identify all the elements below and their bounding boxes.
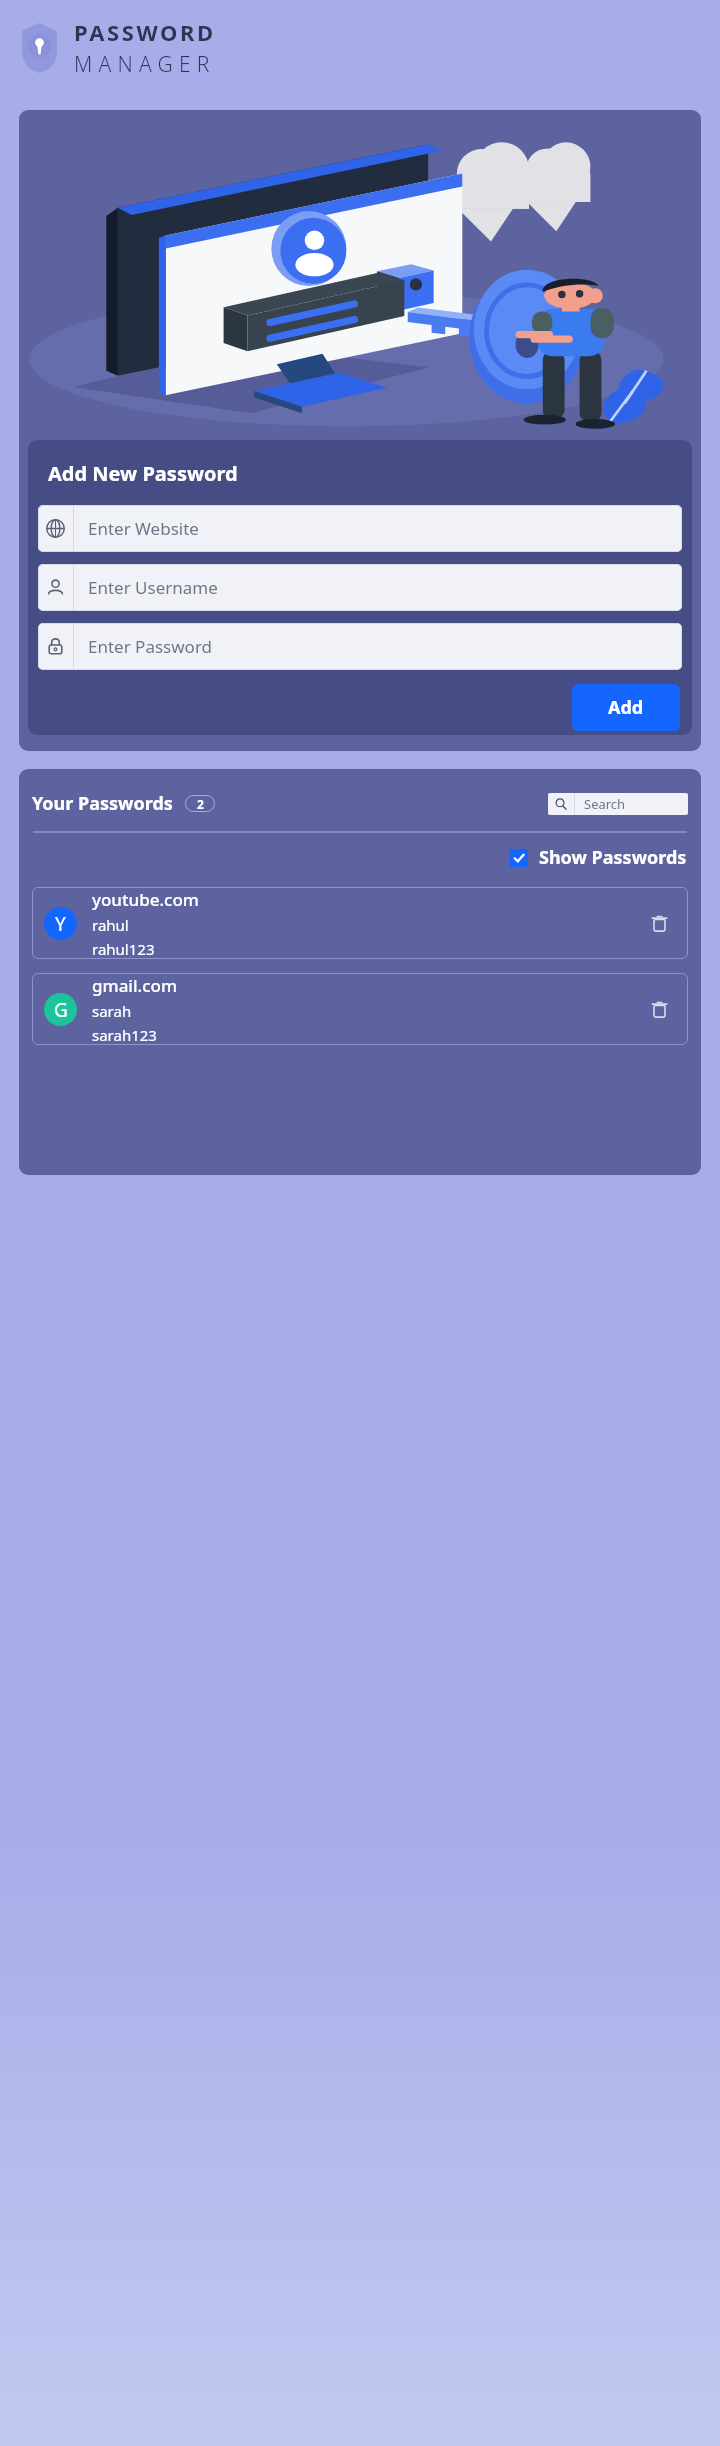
staticText: 2	[197, 796, 204, 812]
staticText: MANAGER	[74, 50, 216, 79]
button[interactable]: Show Passwords	[32, 845, 688, 870]
button[interactable]: Delete gmail.com password	[642, 992, 676, 1026]
button[interactable]: Y	[32, 887, 688, 959]
staticText: Your Passwords	[32, 791, 173, 816]
button[interactable]: Add	[572, 684, 680, 731]
button[interactable]: Delete youtube.com password	[642, 906, 676, 940]
staticText: Enter Website	[88, 517, 199, 540]
staticText: Search	[584, 795, 626, 813]
staticText: youtube.com	[92, 888, 199, 911]
staticText: Add New Password	[48, 460, 238, 487]
staticText: PASSWORD	[74, 17, 216, 47]
staticText: Add	[608, 695, 644, 720]
button[interactable]: 2	[185, 795, 215, 812]
staticText: sarah	[92, 1001, 132, 1021]
staticText: G	[54, 997, 68, 1023]
button[interactable]: Enter Username	[38, 564, 682, 611]
staticText: Show Passwords	[539, 845, 687, 870]
staticText: Y	[55, 911, 66, 937]
staticText: rahul	[92, 915, 129, 935]
staticText: gmail.com	[92, 974, 177, 997]
staticText: rahul123	[92, 939, 155, 959]
button[interactable]: G	[32, 973, 688, 1045]
button[interactable]: Enter Website	[38, 505, 682, 552]
staticText: sarah123	[92, 1025, 157, 1045]
staticText: Enter Username	[88, 576, 218, 599]
button[interactable]: Search	[548, 793, 688, 815]
button[interactable]: Enter Password	[38, 623, 682, 670]
staticText: Enter Password	[88, 635, 213, 658]
